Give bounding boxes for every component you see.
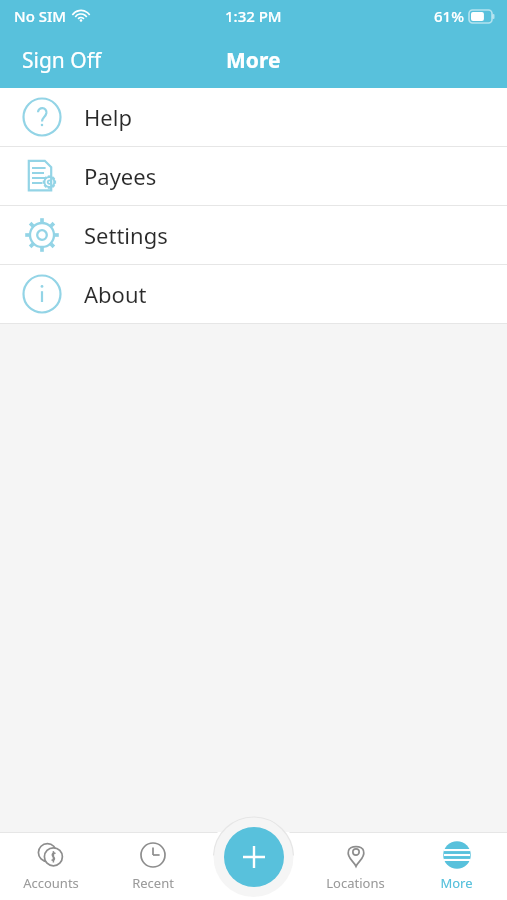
staticText: 61% [434,6,464,26]
staticText: Recent [132,874,174,892]
staticText: More [440,874,473,892]
staticText: About [84,279,147,309]
button[interactable]: Accounts [0,832,102,900]
staticText: No SIM [14,6,67,26]
button[interactable]: Locations [305,832,406,900]
button[interactable]: About [0,265,507,323]
button[interactable]: Sign Off [0,36,124,85]
button[interactable]: Settings [0,206,507,264]
staticText: Locations [326,874,385,892]
button[interactable]: Add [224,827,284,887]
staticText: More [226,46,281,75]
staticText: Settings [84,220,168,250]
staticText: Sign Off [22,46,102,75]
button[interactable]: More [406,832,507,900]
button[interactable]: Recent [102,832,204,900]
staticText: Payees [84,161,157,191]
staticText: Accounts [23,874,79,892]
button[interactable]: Help [0,88,507,146]
staticText: Help [84,102,132,132]
staticText: 1:32 PM [225,6,282,26]
button[interactable]: Payees [0,147,507,205]
